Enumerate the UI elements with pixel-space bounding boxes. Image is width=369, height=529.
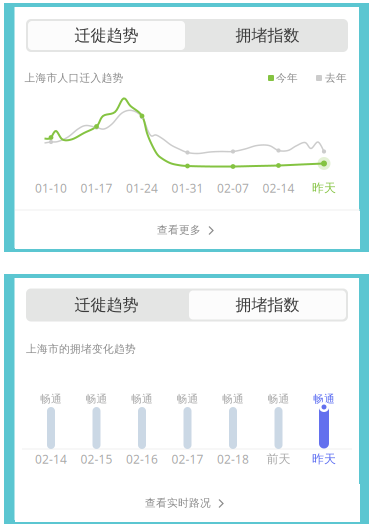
staticText: 查看实时路况 <box>145 496 211 509</box>
staticText: 01-31 <box>171 180 203 196</box>
staticText: 拥堵指数 <box>235 295 299 315</box>
staticText: 上海市人口迁入趋势 <box>24 71 123 84</box>
staticText: 畅通 <box>222 392 244 405</box>
staticText: 畅通 <box>267 392 289 405</box>
staticText: 畅通 <box>176 392 198 405</box>
button[interactable]: 拥堵指数 <box>187 19 348 52</box>
staticText: 02-14 <box>35 451 67 467</box>
button[interactable]: 查看更多 <box>15 211 360 249</box>
staticText: 去年 <box>325 71 347 84</box>
staticText: 畅通 <box>131 392 153 405</box>
staticText: 02-15 <box>80 451 112 467</box>
staticText: 02-14 <box>262 180 294 196</box>
staticText: 01-17 <box>80 180 112 196</box>
staticText: 前天 <box>266 452 290 466</box>
staticText: 02-16 <box>126 451 158 467</box>
staticText: 01-24 <box>126 180 158 196</box>
staticText: 查看更多 <box>157 223 201 236</box>
staticText: 昨天 <box>312 181 336 195</box>
staticText: 02-17 <box>171 451 203 467</box>
staticText: 02-18 <box>217 451 249 467</box>
staticText: 02-07 <box>217 180 249 196</box>
staticText: 迁徙趋势 <box>74 26 138 45</box>
staticText: 01-10 <box>35 180 67 196</box>
staticText: 上海市的拥堵变化趋势 <box>26 342 136 355</box>
staticText: 拥堵指数 <box>235 26 299 45</box>
staticText: 今年 <box>276 71 298 84</box>
button[interactable]: 迁徙趋势 <box>26 19 187 52</box>
button[interactable]: 查看实时路况 <box>15 484 360 522</box>
staticText: 畅通 <box>313 392 335 405</box>
button[interactable]: 迁徙趋势 <box>26 288 187 321</box>
staticText: 迁徙趋势 <box>74 295 138 315</box>
staticText: 畅通 <box>40 392 62 405</box>
button[interactable]: 拥堵指数 <box>187 288 348 321</box>
staticText: 畅通 <box>85 392 107 405</box>
staticText: 昨天 <box>312 452 336 466</box>
